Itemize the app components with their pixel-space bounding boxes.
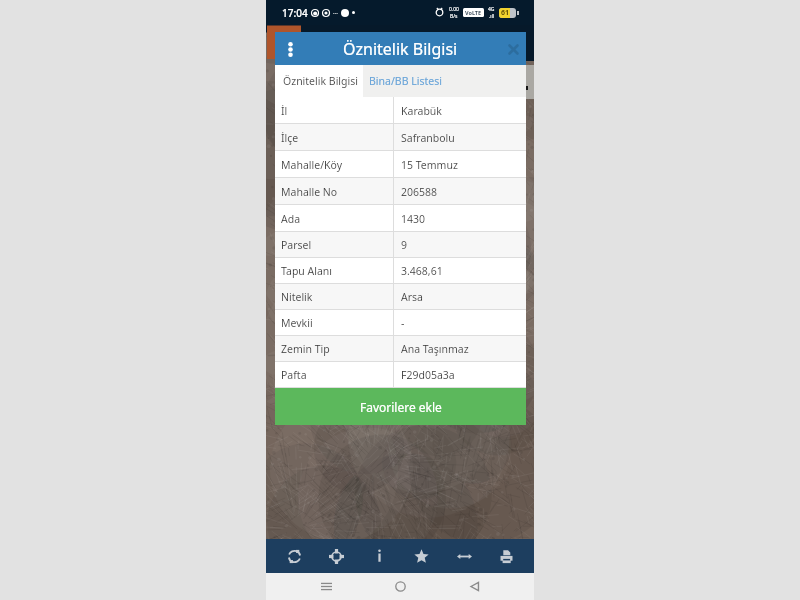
- button[interactable]: Back: [460, 573, 488, 600]
- button[interactable]: Print: [491, 541, 521, 571]
- staticText: B/s: [450, 13, 458, 20]
- staticText: Öznitelik Bilgisi: [343, 38, 458, 60]
- button[interactable]: More options: [275, 34, 305, 64]
- staticText: Zemin Tip: [281, 342, 330, 356]
- button[interactable]: Bina/BB Listesi: [363, 65, 450, 97]
- button[interactable]: Favorilere ekle: [275, 388, 526, 425]
- staticText: .ıll: [489, 13, 495, 20]
- button[interactable]: Öznitelik Bilgisi: [275, 65, 363, 97]
- button[interactable]: Favorites: [406, 541, 436, 571]
- button[interactable]: Info: [364, 541, 394, 571]
- staticText: İlçe: [281, 131, 299, 145]
- button[interactable]: Recents: [312, 573, 340, 600]
- staticText: Ada: [281, 212, 301, 226]
- staticText: Öznitelik Bilgisi: [283, 74, 358, 88]
- button[interactable]: Measure: [449, 541, 479, 571]
- staticText: Mahalle No: [281, 185, 338, 199]
- staticText: Parsel: [281, 238, 312, 252]
- button[interactable]: Locate: [321, 541, 351, 571]
- staticText: Nitelik: [281, 290, 313, 304]
- staticText: Ana Taşınmaz: [401, 342, 469, 356]
- staticText: ···: [333, 9, 338, 17]
- staticText: F29d05a3a: [401, 368, 455, 382]
- staticText: Karabük: [401, 104, 442, 118]
- staticText: Arsa: [401, 290, 423, 304]
- staticText: VoLTE: [465, 9, 482, 16]
- staticText: 1430: [401, 212, 426, 226]
- button[interactable]: Close: [500, 36, 526, 62]
- staticText: 15 Temmuz: [401, 158, 458, 172]
- staticText: 9: [401, 238, 408, 252]
- staticText: İl: [281, 104, 288, 118]
- staticText: 17:04: [282, 6, 308, 20]
- staticText: -: [401, 316, 405, 330]
- button[interactable]: Home: [386, 573, 414, 600]
- button[interactable]: Refresh: [279, 541, 309, 571]
- staticText: 0.00: [449, 6, 459, 13]
- staticText: 206588: [401, 185, 438, 199]
- staticText: Bina/BB Listesi: [369, 74, 442, 88]
- staticText: Favorilere ekle: [360, 399, 442, 415]
- staticText: Mahalle/Köy: [281, 158, 343, 172]
- staticText: 3.468,61: [401, 264, 443, 278]
- staticText: Safranbolu: [401, 131, 455, 145]
- staticText: Mevkii: [281, 316, 313, 330]
- staticText: 61: [501, 8, 510, 18]
- staticText: 4G: [488, 6, 495, 13]
- staticText: Tapu Alanı: [281, 264, 333, 278]
- staticText: Pafta: [281, 368, 307, 382]
